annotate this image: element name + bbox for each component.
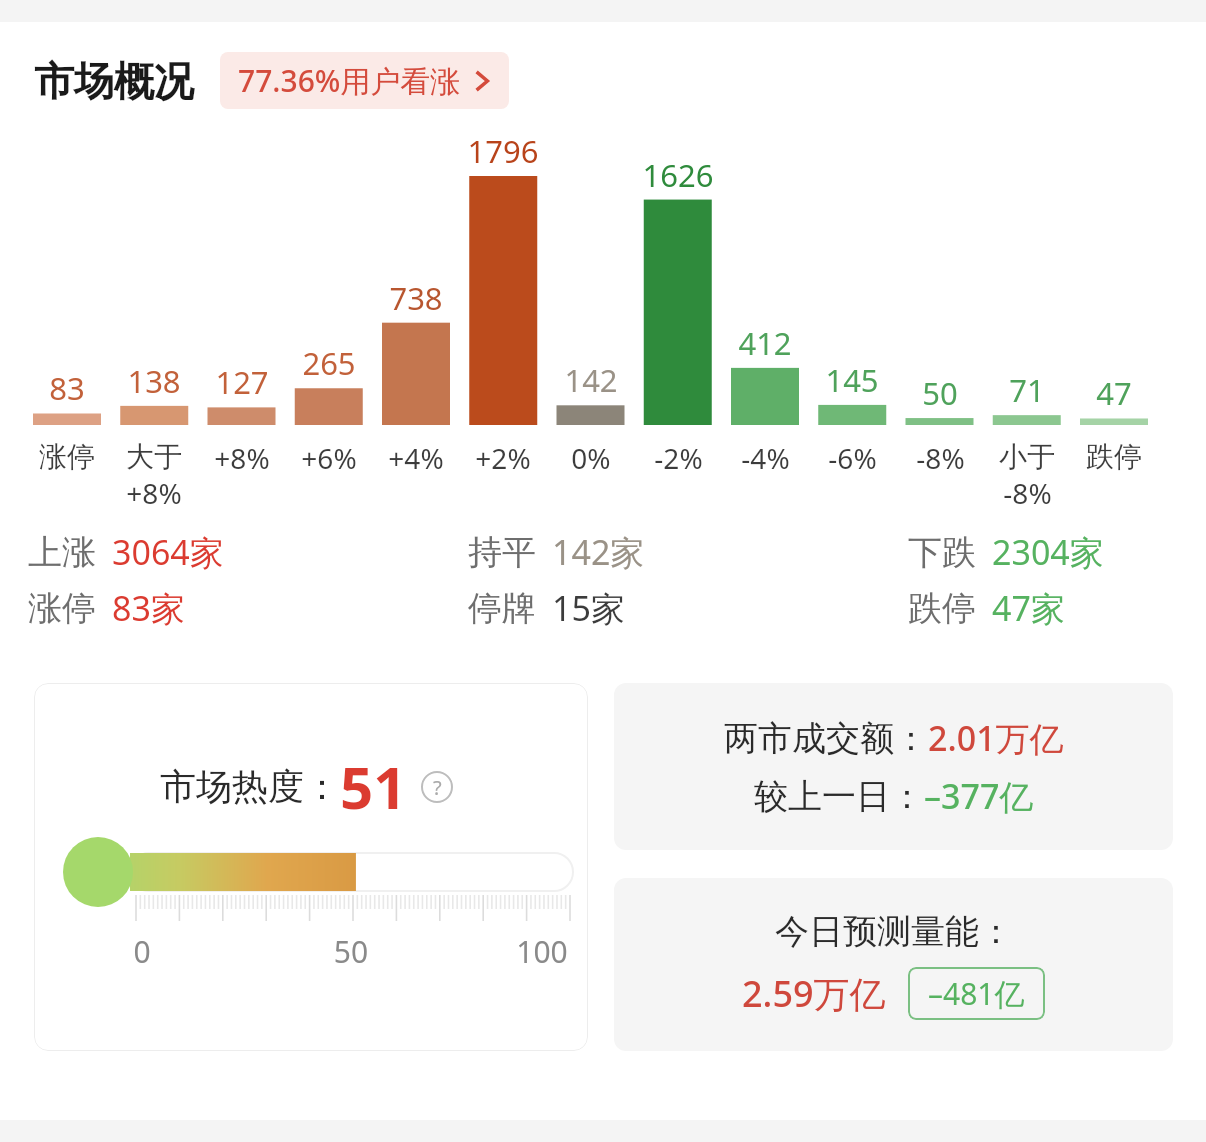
staticText: 47家: [992, 585, 1065, 631]
staticText: 71: [981, 369, 1073, 411]
button[interactable]: 77.36%用户看涨: [220, 52, 509, 109]
button[interactable]: 市场热度：: [34, 683, 588, 1051]
staticText: 2.59万亿: [742, 969, 886, 1018]
staticText: 738: [370, 277, 462, 319]
staticText: 大于: [126, 439, 182, 474]
staticText: 47: [1068, 372, 1160, 414]
staticText: 今日预测量能：: [775, 910, 1013, 953]
staticText: +4%: [388, 439, 444, 477]
staticText: 127: [196, 361, 288, 403]
staticText: 83: [21, 367, 113, 409]
staticText: 0%: [571, 439, 611, 477]
staticText: 265: [283, 342, 375, 384]
staticText: –481亿: [928, 973, 1025, 1014]
staticText: -8%: [916, 439, 965, 477]
staticText: +8%: [214, 439, 270, 477]
staticText: 停牌: [468, 587, 536, 630]
staticText: -8%: [1003, 474, 1052, 512]
staticText: 77.36%用户看涨: [238, 60, 461, 101]
staticText: 51: [340, 747, 407, 826]
staticText: 50: [894, 372, 986, 414]
staticText: 142: [545, 359, 637, 401]
staticText: 较上一日：: [754, 775, 924, 818]
staticText: 2304家: [992, 529, 1104, 575]
staticText: 100: [512, 931, 572, 972]
staticText: 下跌: [908, 531, 976, 574]
staticText: 3064家: [112, 529, 224, 575]
staticText: 跌停: [1086, 439, 1142, 474]
staticText: 持平: [468, 531, 536, 574]
staticText: 涨停: [39, 439, 95, 474]
button[interactable]: 今日预测量能：: [614, 878, 1173, 1051]
staticText: -4%: [741, 439, 790, 477]
staticText: 0: [112, 931, 172, 972]
staticText: 两市成交额：: [724, 717, 928, 760]
staticText: –377亿: [924, 773, 1034, 819]
staticText: 138: [108, 360, 200, 402]
staticText: 上涨: [28, 531, 96, 574]
staticText: 50: [321, 931, 381, 972]
staticText: +6%: [301, 439, 357, 477]
staticText: 1796: [457, 130, 549, 172]
button[interactable]: 两市成交额：: [614, 683, 1173, 850]
staticText: 涨停: [28, 587, 96, 630]
staticText: 83家: [112, 585, 185, 631]
staticText: 142家: [552, 529, 645, 575]
staticText: 市场概况: [34, 56, 194, 106]
button[interactable]: 帮助说明: [421, 771, 453, 803]
staticText: -2%: [654, 439, 703, 477]
staticText: ?: [433, 774, 442, 801]
staticText: +2%: [475, 439, 531, 477]
staticText: 2.01万亿: [928, 715, 1064, 761]
staticText: 跌停: [908, 587, 976, 630]
staticText: +8%: [126, 474, 182, 512]
staticText: -6%: [828, 439, 877, 477]
staticText: 15家: [552, 585, 625, 631]
staticText: 市场热度：: [160, 764, 340, 809]
staticText: 412: [719, 322, 811, 364]
staticText: 145: [806, 359, 898, 401]
staticText: 1626: [632, 154, 724, 196]
staticText: 小于: [999, 439, 1055, 474]
